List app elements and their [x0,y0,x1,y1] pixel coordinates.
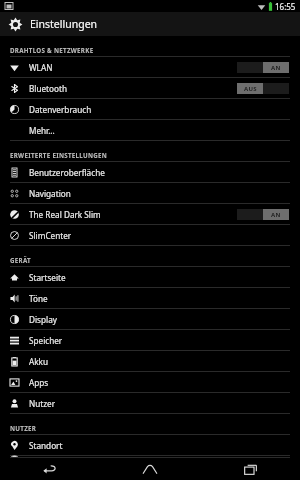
staticText: SlimCenter [29,230,300,241]
button[interactable]: Ein [237,62,289,73]
button[interactable]: Navigation [0,183,300,204]
staticText: AN [271,211,281,219]
button[interactable]: Töne [0,288,300,309]
button[interactable]: Bluetooth [0,78,300,99]
staticText: Einstellungen [30,17,98,31]
button[interactable]: Standort [0,435,300,456]
staticText: Speicher [29,335,300,346]
staticText: AN [271,64,281,72]
staticText: Akku [29,356,300,367]
button[interactable]: Display [0,309,300,330]
staticText: NUTZER [10,424,37,432]
button[interactable]: Datenverbrauch [0,99,300,120]
button[interactable]: Startbildschirm [100,458,200,480]
button[interactable]: Einstellungen [0,12,300,36]
staticText: Startseite [29,272,300,283]
staticText: Datenverbrauch [29,104,300,115]
button[interactable]: Mehr... [0,120,300,141]
staticText: GERÄT [10,256,31,264]
staticText: Mehr... [29,125,300,136]
button[interactable]: Nutzer [0,393,300,414]
staticText: Navigation [29,188,300,199]
button[interactable]: WLAN [0,57,300,78]
staticText: Standort [29,440,300,451]
staticText: ERWEITERTE EINSTELLUNGEN [10,151,108,159]
button[interactable]: Aus [237,83,289,94]
button[interactable]: Zurück [0,458,100,480]
staticText: The Real Dark Slim [29,209,237,220]
button[interactable]: Apps [0,372,300,393]
staticText: Nutzer [29,398,300,409]
staticText: Apps [29,377,300,388]
staticText: Bluetooth [29,83,237,94]
staticText: 16:55 [275,1,296,12]
staticText: WLAN [29,62,237,73]
button[interactable]: Benutzeroberfläche [0,162,300,183]
staticText: Benutzeroberfläche [29,167,300,178]
staticText: Display [29,314,300,325]
staticText: DRAHTLOS & NETZWERKE [10,46,94,54]
button[interactable]: Ein [237,209,289,220]
staticText: AUS [244,85,257,93]
button[interactable]: Akku [0,351,300,372]
button[interactable]: Sicherheit [0,456,300,458]
button[interactable]: Speicher [0,330,300,351]
button[interactable]: The Real Dark Slim [0,204,300,225]
staticText: Töne [29,293,300,304]
button[interactable]: Zuletzt verwendet [200,458,300,480]
button[interactable]: SlimCenter [0,225,300,246]
button[interactable]: Startseite [0,267,300,288]
